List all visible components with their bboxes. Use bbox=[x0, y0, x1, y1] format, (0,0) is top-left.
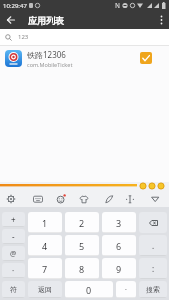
staticText: - bbox=[12, 231, 15, 242]
button[interactable]: @ bbox=[2, 246, 25, 261]
button[interactable]: . bbox=[139, 235, 167, 256]
staticText: 0 bbox=[86, 284, 92, 296]
button[interactable] bbox=[4, 192, 18, 206]
staticText: + bbox=[11, 214, 16, 225]
button[interactable] bbox=[0, 11, 22, 29]
staticText: 10:29:47 bbox=[3, 2, 27, 10]
staticText: . bbox=[152, 240, 155, 251]
staticText: 搜索 bbox=[146, 285, 160, 294]
staticText: 9 bbox=[116, 263, 122, 275]
button[interactable]: · bbox=[116, 281, 136, 298]
staticText: 符 bbox=[10, 285, 17, 294]
staticText: 6 bbox=[116, 240, 122, 252]
staticText: 5 bbox=[79, 240, 85, 252]
staticText: 8 bbox=[79, 263, 85, 275]
staticText: 应用列表 bbox=[28, 15, 64, 26]
button[interactable] bbox=[148, 192, 162, 206]
button[interactable]: 符 bbox=[2, 281, 25, 298]
button[interactable] bbox=[123, 192, 137, 206]
staticText: · bbox=[125, 285, 127, 295]
button[interactable]: 5 bbox=[65, 235, 99, 256]
button[interactable] bbox=[140, 52, 152, 64]
button[interactable]: 返回 bbox=[28, 281, 62, 298]
button[interactable] bbox=[31, 192, 45, 206]
button[interactable]: 1 bbox=[28, 212, 62, 233]
button[interactable]: 4 bbox=[28, 235, 62, 256]
staticText: 铁路12306 bbox=[27, 49, 66, 60]
staticText: 123 bbox=[18, 33, 29, 41]
staticText: com.MobileTicket bbox=[27, 61, 73, 68]
staticText: · bbox=[12, 265, 15, 276]
button[interactable]: 2 bbox=[65, 212, 99, 233]
button[interactable] bbox=[102, 192, 116, 206]
button[interactable]: 9 bbox=[102, 258, 136, 279]
staticText: 1 bbox=[42, 217, 48, 229]
button[interactable]: - bbox=[2, 229, 25, 244]
button[interactable]: 铁路12306 bbox=[0, 46, 169, 77]
button[interactable]: 8 bbox=[65, 258, 99, 279]
button[interactable]: 3 bbox=[102, 212, 136, 233]
staticText: 返回 bbox=[38, 285, 52, 294]
button[interactable]: + bbox=[2, 212, 25, 227]
button[interactable]: 6 bbox=[102, 235, 136, 256]
button[interactable]: 搜索 bbox=[139, 281, 167, 298]
staticText: @ bbox=[10, 249, 17, 259]
button[interactable] bbox=[54, 192, 68, 206]
button[interactable]: 7 bbox=[28, 258, 62, 279]
button[interactable]: : bbox=[139, 258, 167, 279]
button[interactable]: · bbox=[2, 263, 25, 278]
staticText: 3 bbox=[116, 217, 122, 229]
button[interactable] bbox=[139, 212, 167, 233]
button[interactable]: 123 bbox=[0, 29, 169, 45]
staticText: 4 bbox=[42, 240, 48, 252]
button[interactable] bbox=[77, 192, 91, 206]
staticText: 2 bbox=[79, 217, 85, 229]
button[interactable] bbox=[153, 11, 169, 29]
staticText: 7 bbox=[42, 263, 48, 275]
staticText: : bbox=[152, 263, 155, 274]
button[interactable]: 0 bbox=[65, 281, 113, 298]
